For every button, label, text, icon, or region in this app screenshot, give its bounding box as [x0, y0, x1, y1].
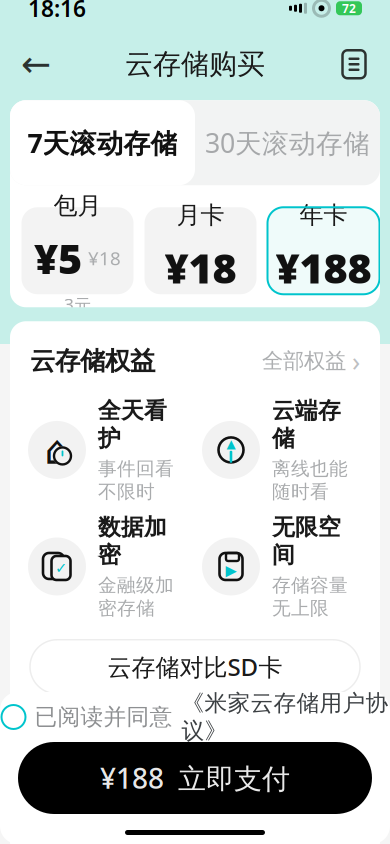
- staticText: 18:16: [28, 0, 86, 23]
- staticText: ▲: [226, 437, 235, 451]
- button[interactable]: 30天滚动存储: [195, 100, 380, 185]
- staticText: 云存储对比SD卡: [107, 651, 282, 683]
- staticText: 事件回看不限时: [98, 457, 174, 503]
- button[interactable]: 云存储对比SD卡: [30, 640, 360, 694]
- staticText: ¥188: [275, 240, 371, 295]
- staticText: 无限空间: [272, 513, 341, 569]
- button[interactable]: 全部权益: [262, 343, 360, 379]
- staticText: 云端存储: [272, 397, 341, 452]
- staticText: ¥18: [88, 246, 121, 270]
- staticText: ¥188 立即支付: [100, 759, 290, 797]
- staticText: ¥5: [34, 230, 82, 285]
- staticText: 数据加密: [98, 513, 167, 569]
- staticText: 更多帮助: [262, 756, 346, 783]
- staticText: 全天看护: [98, 397, 167, 452]
- button[interactable]: ⌂: [28, 397, 188, 503]
- staticText: 金融级加密存储: [98, 574, 174, 620]
- staticText: 云存储权益: [30, 345, 155, 376]
- staticText: 30天滚动存储: [205, 125, 370, 160]
- staticText: ✓: [55, 560, 67, 576]
- staticText: 《米家云存储用户协议》: [181, 689, 388, 745]
- button[interactable]: ▶: [202, 513, 362, 620]
- button[interactable]: 年卡: [267, 207, 379, 294]
- button[interactable]: ✓: [28, 513, 188, 620]
- staticText: 已阅读并同意: [34, 703, 172, 731]
- staticText: ›: [352, 343, 360, 379]
- staticText: 关于共享设备: [68, 809, 206, 837]
- staticText: 帮助中心: [30, 754, 130, 785]
- button[interactable]: 返回: [14, 42, 58, 86]
- staticText: ▶: [225, 562, 236, 579]
- button[interactable]: 更多帮助: [262, 752, 360, 787]
- staticText: 离线也能随时看: [272, 457, 348, 503]
- button[interactable]: ▲: [202, 397, 362, 503]
- staticText: 包月: [53, 191, 101, 221]
- staticText: 3元: [64, 293, 91, 316]
- button[interactable]: 包月: [21, 207, 133, 294]
- staticText: 全部权益: [262, 348, 346, 374]
- staticText: 存储容量无上限: [272, 574, 348, 620]
- staticText: ⌂: [44, 427, 69, 473]
- button[interactable]: ¥188 立即支付: [18, 742, 372, 814]
- button[interactable]: 订单列表: [332, 42, 376, 86]
- button[interactable]: 7天滚动存储: [10, 100, 195, 185]
- staticText: 云存储购买: [125, 47, 265, 81]
- staticText: 7天滚动存储: [27, 125, 177, 160]
- button[interactable]: 月卡: [144, 207, 256, 294]
- staticText: 年卡: [299, 201, 347, 230]
- button[interactable]: 已阅读并同意: [0, 692, 390, 742]
- staticText: 月卡: [176, 201, 224, 230]
- staticText: ←: [21, 44, 51, 85]
- staticText: 72: [342, 0, 356, 16]
- staticText: ¥18: [164, 240, 236, 295]
